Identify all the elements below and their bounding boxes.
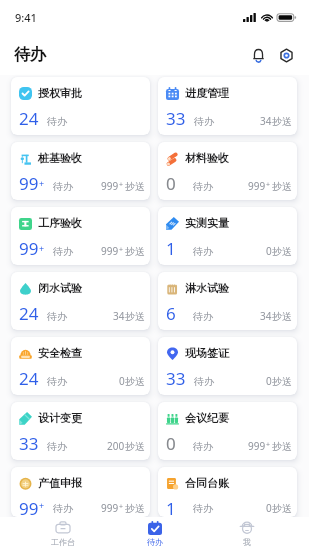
- staticText: 我: [243, 537, 251, 547]
- staticText: 抄送: [272, 115, 292, 128]
- staticText: 待办: [193, 180, 213, 193]
- staticText: 24: [19, 367, 39, 390]
- staticText: 工序验收: [38, 216, 82, 230]
- staticText: 现场签证: [185, 346, 229, 360]
- staticText: 抄送: [125, 440, 145, 453]
- staticText: 99: [19, 237, 39, 260]
- staticText: 待办: [47, 310, 67, 323]
- staticText: 0: [119, 374, 125, 388]
- staticText: 24: [19, 302, 39, 325]
- staticText: 抄送: [272, 440, 292, 453]
- staticText: 工作台: [51, 537, 75, 547]
- staticText: 抄送: [125, 180, 145, 193]
- button[interactable]: 进度管理: [158, 77, 297, 135]
- staticText: +: [266, 180, 271, 190]
- staticText: 24: [19, 107, 39, 130]
- staticText: 抄送: [272, 310, 292, 323]
- staticText: 34: [260, 114, 272, 128]
- staticText: 待办: [47, 440, 67, 453]
- staticText: 抄送: [125, 310, 145, 323]
- staticText: 999: [101, 501, 119, 515]
- staticText: 33: [166, 107, 186, 130]
- staticText: 实测实量: [185, 216, 229, 230]
- button[interactable]: 现场签证: [158, 337, 297, 395]
- button[interactable]: 材料验收: [158, 142, 297, 200]
- staticText: 抄送: [125, 245, 145, 258]
- staticText: 0: [166, 432, 176, 455]
- staticText: 待办: [53, 502, 73, 515]
- staticText: 设计变更: [38, 411, 82, 425]
- staticText: 99: [19, 497, 39, 517]
- staticText: 待办: [194, 115, 214, 128]
- staticText: 999: [248, 439, 266, 453]
- button[interactable]: 我: [201, 517, 293, 550]
- staticText: 材料验收: [185, 151, 229, 165]
- staticText: 淋水试验: [185, 281, 229, 295]
- staticText: 0: [266, 374, 272, 388]
- button[interactable]: 安全检查: [11, 337, 150, 395]
- staticText: +: [39, 177, 45, 189]
- staticText: 桩基验收: [38, 151, 82, 165]
- button[interactable]: 产值申报: [11, 467, 150, 517]
- button[interactable]: 实测实量: [158, 207, 297, 265]
- staticText: 6: [166, 302, 176, 325]
- staticText: 产值申报: [38, 476, 82, 490]
- staticText: +: [119, 180, 124, 190]
- staticText: 会议纪要: [185, 411, 229, 425]
- button[interactable]: 设计变更: [11, 402, 150, 460]
- staticText: 抄送: [125, 502, 145, 515]
- staticText: 999: [101, 179, 119, 193]
- button[interactable]: 工序验收: [11, 207, 150, 265]
- staticText: 待办: [147, 537, 163, 547]
- staticText: 待办: [193, 245, 213, 258]
- staticText: 抄送: [272, 180, 292, 193]
- staticText: 待办: [14, 45, 46, 65]
- staticText: 34: [113, 309, 125, 323]
- button[interactable]: Settings: [272, 41, 300, 69]
- staticText: 待办: [53, 245, 73, 258]
- staticText: 99: [19, 172, 39, 195]
- staticText: 待办: [193, 440, 213, 453]
- staticText: 进度管理: [185, 86, 229, 100]
- button[interactable]: 合同台账: [158, 467, 297, 517]
- staticText: 抄送: [125, 375, 145, 388]
- staticText: 33: [166, 367, 186, 390]
- staticText: 33: [19, 432, 39, 455]
- staticText: 200: [107, 439, 125, 453]
- button[interactable]: Notifications: [244, 41, 272, 69]
- staticText: 闭水试验: [38, 281, 82, 295]
- staticText: 9:41: [15, 10, 37, 25]
- staticText: +: [39, 242, 45, 254]
- staticText: 1: [166, 497, 176, 517]
- staticText: 1: [166, 237, 176, 260]
- staticText: 待办: [47, 115, 67, 128]
- staticText: 34: [260, 309, 272, 323]
- button[interactable]: 桩基验收: [11, 142, 150, 200]
- staticText: +: [119, 502, 124, 512]
- staticText: 待办: [47, 375, 67, 388]
- staticText: 0: [266, 501, 272, 515]
- button[interactable]: 淋水试验: [158, 272, 297, 330]
- staticText: +: [266, 440, 271, 450]
- staticText: 抄送: [272, 502, 292, 515]
- staticText: 待办: [194, 375, 214, 388]
- button[interactable]: 待办: [109, 517, 201, 550]
- staticText: +: [119, 245, 124, 255]
- button[interactable]: 会议纪要: [158, 402, 297, 460]
- button[interactable]: 闭水试验: [11, 272, 150, 330]
- staticText: 999: [248, 179, 266, 193]
- staticText: 授权审批: [38, 86, 82, 100]
- staticText: 抄送: [272, 245, 292, 258]
- staticText: 999: [101, 244, 119, 258]
- button[interactable]: 授权审批: [11, 77, 150, 135]
- staticText: 待办: [53, 180, 73, 193]
- staticText: 安全检查: [38, 346, 82, 360]
- staticText: 合同台账: [185, 476, 229, 490]
- staticText: 0: [166, 172, 176, 195]
- staticText: 抄送: [272, 375, 292, 388]
- button[interactable]: 工作台: [16, 517, 109, 550]
- staticText: 待办: [193, 310, 213, 323]
- staticText: 待办: [193, 502, 213, 515]
- staticText: 0: [266, 244, 272, 258]
- staticText: +: [39, 499, 45, 511]
